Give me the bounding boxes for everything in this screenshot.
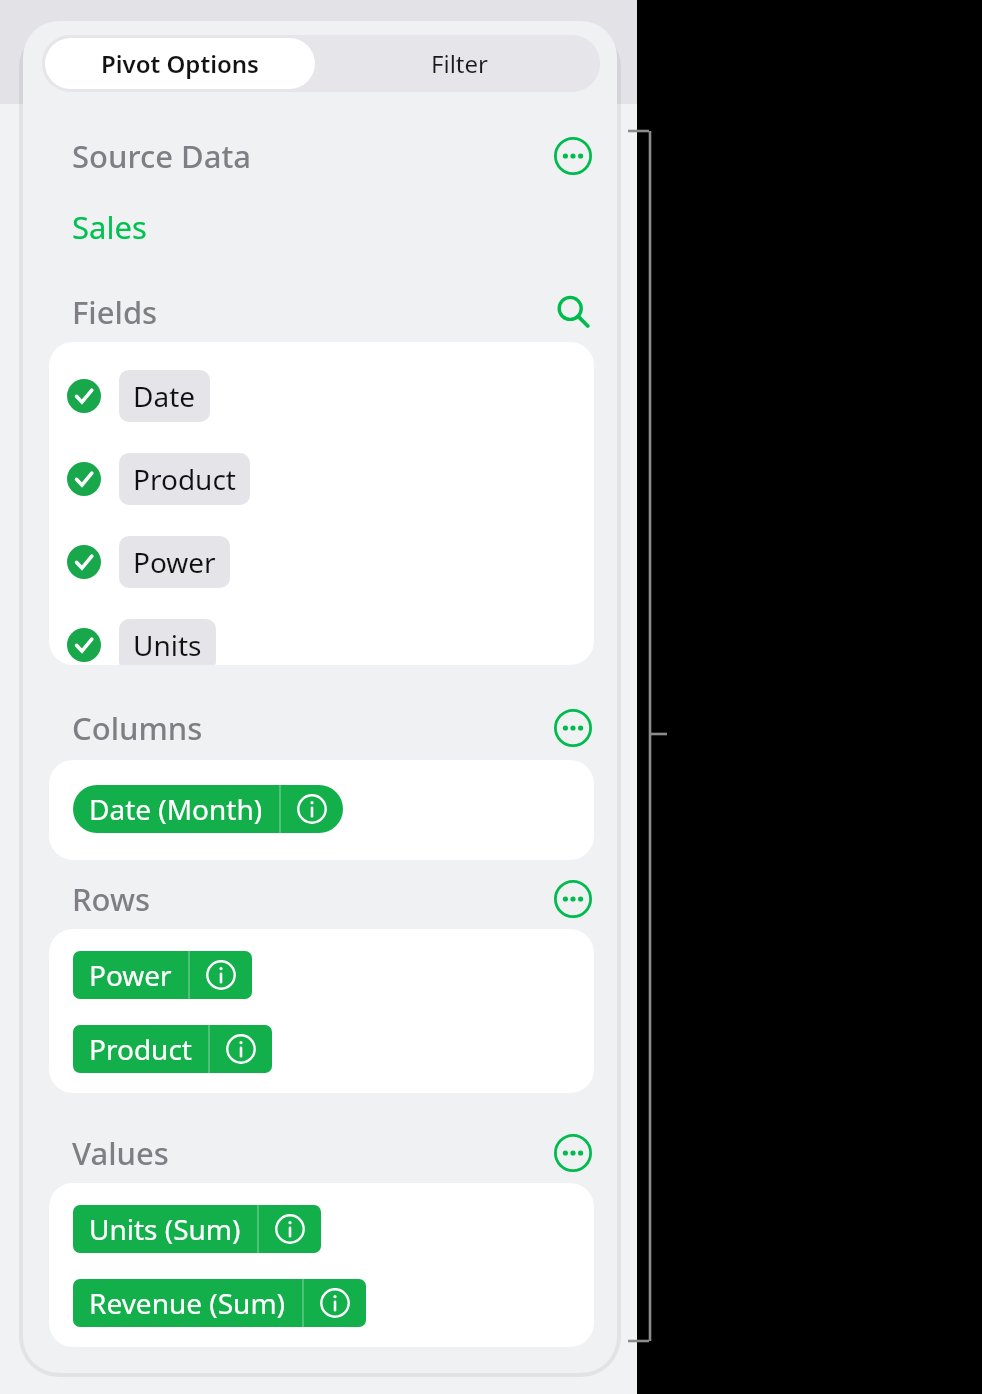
button[interactable]: Units — [67, 617, 216, 665]
staticText: Sales — [72, 206, 147, 248]
staticText: Filter — [431, 47, 488, 80]
staticText: Rows — [72, 878, 150, 920]
button[interactable]: Power — [67, 534, 230, 590]
staticText: Revenue (Sum) — [89, 1284, 286, 1322]
button[interactable]: Date (Month) — [73, 785, 343, 833]
staticText: Fields — [72, 291, 158, 333]
button[interactable]: Pivot Options — [45, 38, 315, 89]
button[interactable]: Search fields — [547, 286, 599, 338]
staticText: Source Data — [72, 135, 251, 177]
staticText: Units (Sum) — [89, 1210, 241, 1248]
button[interactable]: Product — [67, 451, 250, 507]
button[interactable]: Date — [67, 368, 210, 424]
staticText: Pivot Options — [101, 47, 259, 80]
button[interactable]: Filter — [318, 35, 600, 92]
staticText: Units — [133, 626, 202, 664]
staticText: Product — [133, 460, 236, 498]
button[interactable]: Units (Sum) — [73, 1205, 321, 1253]
button[interactable]: Product — [73, 1025, 272, 1073]
staticText: Power — [89, 956, 172, 994]
button[interactable]: Revenue (Sum) — [73, 1279, 366, 1327]
staticText: Product — [89, 1030, 192, 1068]
button[interactable]: Power — [73, 951, 252, 999]
button[interactable]: Values options — [547, 1127, 599, 1179]
button[interactable]: Rows options — [547, 873, 599, 925]
staticText: Date — [133, 377, 196, 415]
button[interactable]: Columns options — [547, 702, 599, 754]
staticText: Values — [72, 1132, 169, 1174]
staticText: Columns — [72, 707, 203, 749]
button[interactable]: Source Data options — [547, 130, 599, 182]
staticText: Date (Month) — [89, 790, 263, 828]
staticText: Power — [133, 543, 216, 581]
